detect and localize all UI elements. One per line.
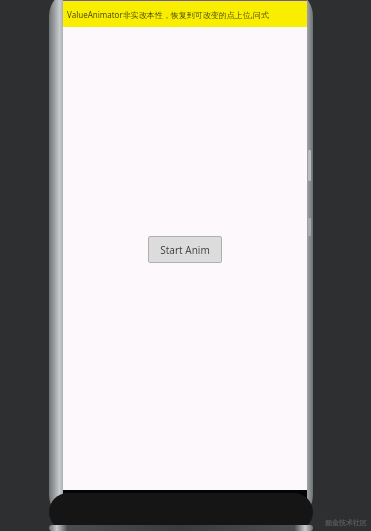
button[interactable]: ValueAnimator非实改本性，恢复到可改变的点上位,问式 [63, 1, 307, 27]
staticText: 掘金技术社区 [325, 518, 367, 527]
staticText: ValueAnimator非实改本性，恢复到可改变的点上位,问式 [67, 9, 269, 20]
button[interactable]: Start Anim [148, 236, 222, 263]
staticText: Start Anim [160, 243, 210, 257]
